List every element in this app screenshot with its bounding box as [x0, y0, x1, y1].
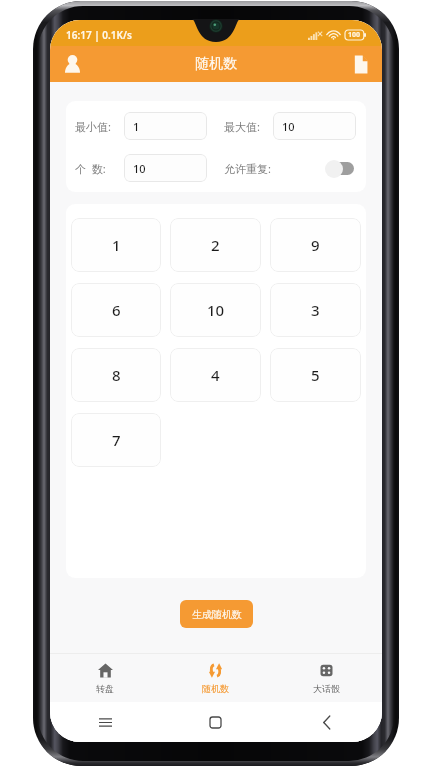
button[interactable]: 6: [71, 283, 161, 337]
button[interactable]: 生成随机数: [180, 600, 253, 628]
staticText: 7: [112, 430, 121, 450]
staticText: 3: [311, 300, 320, 320]
button[interactable]: 1: [124, 112, 207, 140]
staticText: 最大值:: [224, 119, 273, 134]
staticText: 5: [311, 365, 320, 385]
staticText: 随机数: [195, 55, 237, 73]
button[interactable]: 大话骰: [271, 654, 382, 702]
staticText: 4: [211, 365, 220, 385]
button[interactable]: 10: [273, 112, 356, 140]
button[interactable]: 10: [124, 154, 207, 182]
staticText: 9: [311, 235, 320, 255]
button[interactable]: 9: [270, 218, 361, 272]
button[interactable]: Recents: [50, 702, 160, 742]
staticText: 100: [348, 30, 361, 40]
button[interactable]: 2: [170, 218, 261, 272]
button[interactable]: Allow repeat: [325, 159, 354, 178]
staticText: 10: [207, 300, 225, 320]
staticText: 10: [282, 119, 295, 134]
button[interactable]: 8: [71, 348, 161, 402]
button[interactable]: Account: [50, 46, 94, 82]
staticText: 生成随机数: [192, 608, 242, 621]
staticText: 大话骰: [313, 683, 340, 694]
button[interactable]: 5: [270, 348, 361, 402]
button[interactable]: 4: [170, 348, 261, 402]
staticText: 转盘: [96, 683, 114, 694]
staticText: 6: [112, 300, 121, 320]
staticText: 10: [133, 161, 146, 176]
button[interactable]: Home: [160, 702, 271, 742]
button[interactable]: Back: [271, 702, 382, 742]
staticText: 8: [112, 365, 121, 385]
button[interactable]: History: [340, 46, 382, 82]
staticText: 个 数:: [75, 161, 124, 176]
staticText: 最小值:: [75, 119, 124, 134]
button[interactable]: 1: [71, 218, 161, 272]
button[interactable]: 转盘: [50, 654, 160, 702]
button[interactable]: 随机数: [160, 654, 271, 702]
staticText: 2: [211, 235, 220, 255]
staticText: 随机数: [202, 683, 229, 694]
staticText: 允许重复:: [224, 161, 273, 176]
button[interactable]: 7: [71, 413, 161, 467]
button[interactable]: 3: [270, 283, 361, 337]
button[interactable]: 10: [170, 283, 261, 337]
staticText: 16:17 | 0.1K/s: [66, 28, 132, 42]
staticText: 1: [112, 235, 121, 255]
staticText: 1: [133, 119, 140, 134]
